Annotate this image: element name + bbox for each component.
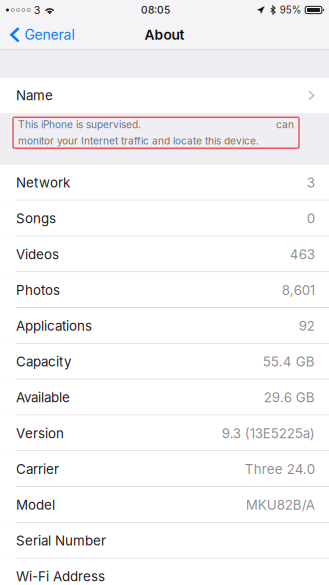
staticText: Wi-Fi Address xyxy=(16,568,105,584)
staticText: 3 xyxy=(307,175,315,191)
staticText: About xyxy=(144,26,184,43)
staticText: 3 xyxy=(34,3,41,16)
staticText: 9.3 (13E5225a) xyxy=(222,425,315,441)
button[interactable]: Network xyxy=(0,165,329,201)
button[interactable]: Videos xyxy=(0,236,329,272)
staticText: Capacity xyxy=(16,354,71,370)
button[interactable]: Serial Number xyxy=(0,523,329,559)
staticText: Model xyxy=(16,497,55,513)
staticText: 8,601 xyxy=(282,282,315,298)
staticText: Network xyxy=(16,175,70,191)
staticText: Serial Number xyxy=(16,533,106,549)
button[interactable]: Version xyxy=(0,415,329,451)
staticText: 95% xyxy=(280,4,302,16)
button[interactable]: Songs xyxy=(0,201,329,236)
staticText: 29.6 GB xyxy=(264,389,315,405)
staticText: 0 xyxy=(307,210,315,226)
staticText: General xyxy=(25,26,75,43)
staticText: Available xyxy=(16,389,70,405)
staticText: Songs xyxy=(16,210,56,226)
staticText: Photos xyxy=(16,282,60,298)
button[interactable]: Capacity xyxy=(0,344,329,380)
staticText: Three 24.0 xyxy=(245,461,315,477)
staticText: Name xyxy=(16,87,53,103)
staticText: can xyxy=(276,118,294,131)
staticText: Carrier xyxy=(16,461,59,477)
button[interactable]: Name xyxy=(0,78,329,113)
button[interactable]: Available xyxy=(0,380,329,415)
staticText: Version xyxy=(16,425,64,441)
staticText: 55.4 GB xyxy=(263,354,315,370)
staticText: Applications xyxy=(16,318,92,334)
staticText: Videos xyxy=(16,246,59,262)
button[interactable]: Model xyxy=(0,487,329,523)
staticText: 92 xyxy=(299,318,315,334)
button[interactable]: Wi-Fi Address xyxy=(0,559,329,585)
staticText: MKU82B/A xyxy=(246,497,315,513)
button[interactable]: Carrier xyxy=(0,451,329,487)
staticText: 463 xyxy=(290,246,315,262)
staticText: This iPhone is supervised. xyxy=(18,118,141,131)
staticText: 08:05 xyxy=(141,4,170,16)
button[interactable]: General xyxy=(0,20,85,49)
button[interactable]: Photos xyxy=(0,272,329,308)
staticText: monitor your Internet traffic and locate… xyxy=(18,135,259,147)
button[interactable]: Applications xyxy=(0,308,329,344)
